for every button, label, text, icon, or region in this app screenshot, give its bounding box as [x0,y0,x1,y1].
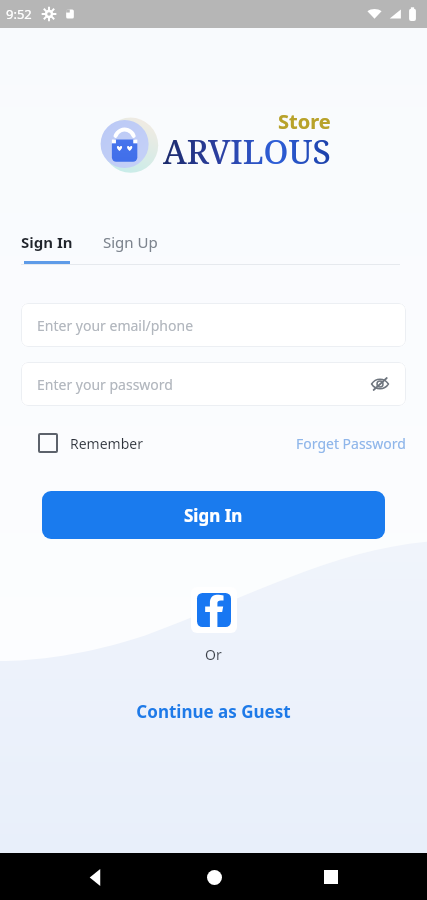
staticText: Remember [70,434,143,453]
staticText: Or [205,645,222,664]
button[interactable]: Enter your password [21,362,406,406]
staticText: Sign Up [103,232,158,252]
button[interactable]: Sign In [42,491,385,539]
button[interactable]: Show password [370,374,390,394]
button[interactable]: Sign in with Facebook [191,587,237,633]
staticText: Store [278,108,331,135]
staticText: Enter your email/phone [37,316,390,335]
button[interactable]: Back [74,855,118,899]
staticText: 9:52 [6,5,32,23]
button[interactable]: Sign Up [101,232,160,252]
staticText: Sign In [184,504,243,527]
staticText: Forget Password [296,434,406,453]
button[interactable]: Continue as Guest [0,700,427,723]
button[interactable]: Remember [21,433,143,453]
button[interactable]: Forget Password [296,434,406,453]
staticText: ARVILOUS [163,129,331,174]
staticText: Sign In [21,232,73,252]
staticText: Enter your password [37,375,370,394]
button[interactable]: Recent apps [309,855,353,899]
button[interactable]: Enter your email/phone [21,303,406,347]
button[interactable]: Sign In [21,232,73,264]
button[interactable]: Home [192,855,236,899]
